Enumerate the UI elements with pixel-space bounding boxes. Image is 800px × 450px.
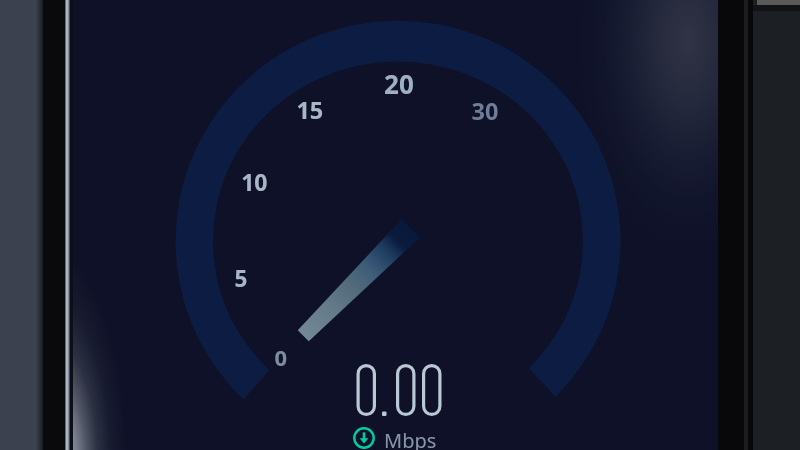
button[interactable]: Speed test gauge [0,0,800,450]
